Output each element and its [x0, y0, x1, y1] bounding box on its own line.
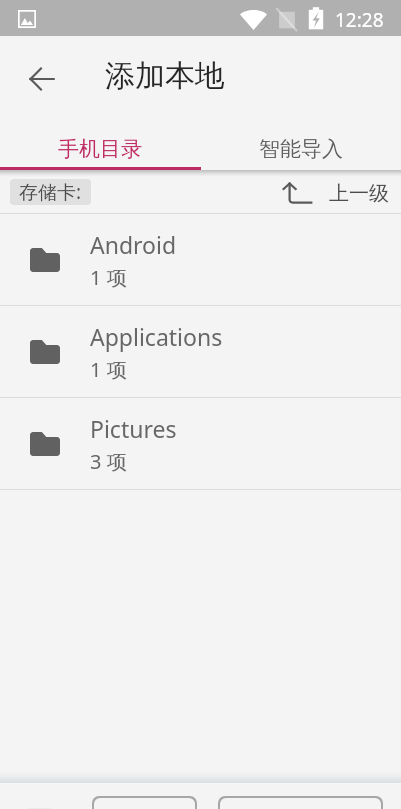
staticText: 手机目录 — [58, 136, 142, 162]
staticText: 智能导入 — [259, 136, 343, 162]
staticText: Android — [90, 229, 177, 260]
staticText: 存储卡: — [19, 179, 82, 205]
staticText: 3 项 — [90, 448, 127, 475]
button[interactable]: 手机目录 — [0, 136, 200, 170]
button[interactable]: 智能导入 — [200, 136, 401, 170]
staticText: Applications — [90, 321, 223, 352]
staticText: 1 项 — [90, 356, 127, 383]
staticText: 添加本地 — [105, 57, 225, 95]
staticText: 1 项 — [90, 264, 127, 291]
staticText: 上一级 — [329, 181, 389, 206]
button[interactable]: Applications — [0, 306, 401, 397]
button[interactable] — [92, 796, 197, 809]
staticText: 12:28 — [335, 7, 384, 33]
button[interactable]: 上一级 — [273, 173, 401, 213]
button[interactable]: Android — [0, 214, 401, 305]
staticText: Pictures — [90, 413, 177, 444]
button[interactable]: Back — [18, 55, 66, 103]
button[interactable] — [218, 796, 383, 809]
button[interactable]: 存储卡: — [10, 179, 91, 205]
button[interactable]: Pictures — [0, 398, 401, 489]
